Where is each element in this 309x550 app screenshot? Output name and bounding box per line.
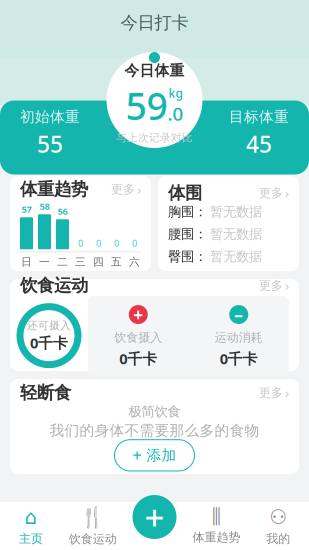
staticText: 还可摄入 xyxy=(27,319,71,332)
staticText: 四 xyxy=(93,255,104,268)
staticText: + xyxy=(133,303,143,326)
staticText: 暂无数据 xyxy=(210,204,262,220)
staticText: 与上次记录对比 xyxy=(116,131,193,144)
staticText: 臀围： xyxy=(168,248,207,265)
staticText: 添加 xyxy=(146,446,176,464)
staticText: 六 xyxy=(129,255,140,268)
button[interactable]: 🍴 xyxy=(62,500,124,550)
button[interactable]: 更多 xyxy=(259,276,289,294)
staticText: 更多 xyxy=(259,186,283,200)
staticText: 57 xyxy=(21,203,31,215)
staticText: 0 xyxy=(78,237,83,249)
staticText: ⌂ xyxy=(24,506,37,528)
staticText: 58 xyxy=(39,200,49,212)
staticText: 暂无数据 xyxy=(210,226,262,242)
staticText: ⚇ xyxy=(269,506,287,528)
staticText: 我们的身体不需要那么多的食物 xyxy=(49,422,259,440)
staticText: 0千卡 xyxy=(119,349,157,368)
staticText: › xyxy=(285,184,289,202)
button[interactable]: ⫼ xyxy=(185,501,247,550)
staticText: 我的 xyxy=(266,531,290,546)
staticText: 0 xyxy=(114,237,119,249)
staticText: – xyxy=(234,303,243,326)
staticText: 更多 xyxy=(259,278,283,293)
staticText: 极简饮食 xyxy=(128,403,180,420)
staticText: 轻断食 xyxy=(20,382,71,403)
staticText: 体重趋势 xyxy=(192,530,240,545)
staticText: 饮食运动 xyxy=(69,532,117,546)
staticText: 55 xyxy=(37,129,63,159)
button[interactable]: 体围 xyxy=(158,176,299,271)
staticText: ⫼ xyxy=(212,507,221,527)
staticText: 0 xyxy=(96,237,101,249)
staticText: 56 xyxy=(57,205,67,217)
staticText: 暂无数据 xyxy=(210,248,262,265)
staticText: 初始体重 xyxy=(20,108,80,126)
staticText: 今日打卡 xyxy=(120,12,188,33)
staticText: 胸围： xyxy=(168,204,207,220)
button[interactable]: Add xyxy=(132,494,176,540)
staticText: 饮食运动 xyxy=(20,275,88,296)
staticText: 更多 xyxy=(111,182,135,197)
staticText: 今日体重 xyxy=(124,62,184,80)
button[interactable]: – xyxy=(188,303,289,368)
button[interactable]: ⌂ xyxy=(0,500,62,550)
staticText: 45 xyxy=(246,129,272,159)
staticText: 🍴 xyxy=(80,506,105,529)
button[interactable]: 更多 xyxy=(259,384,289,401)
staticText: 体重趋势 xyxy=(20,179,88,200)
staticText: 三 xyxy=(75,255,86,268)
staticText: kg xyxy=(168,85,182,101)
staticText: › xyxy=(285,384,289,401)
staticText: 主页 xyxy=(19,531,43,546)
staticText: 0千卡 xyxy=(220,349,258,368)
staticText: 59 xyxy=(125,81,167,130)
staticText: 0千卡 xyxy=(30,333,68,352)
staticText: 二 xyxy=(57,255,68,268)
staticText: 目标体重 xyxy=(229,108,289,126)
staticText: 体围 xyxy=(168,182,202,204)
staticText: 腰围： xyxy=(168,226,207,242)
button[interactable]: + xyxy=(88,303,188,368)
staticText: 一 xyxy=(39,255,50,268)
staticText: 日 xyxy=(21,255,32,268)
staticText: 饮食摄入 xyxy=(114,330,162,345)
button[interactable]: 体重趋势 xyxy=(10,176,151,271)
button[interactable]: ⚇ xyxy=(247,500,309,550)
staticText: › xyxy=(285,276,289,294)
staticText: 五 xyxy=(111,255,122,268)
button[interactable]: + xyxy=(114,440,194,471)
staticText: 0 xyxy=(132,237,137,249)
button[interactable]: 更多 xyxy=(259,184,289,202)
staticText: + xyxy=(132,445,141,466)
button[interactable]: 更多 xyxy=(111,180,141,198)
staticText: 更多 xyxy=(259,385,283,400)
staticText: › xyxy=(137,180,141,198)
staticText: .0 xyxy=(167,101,183,126)
staticText: 运动消耗 xyxy=(215,330,263,345)
staticText: + xyxy=(144,494,164,540)
